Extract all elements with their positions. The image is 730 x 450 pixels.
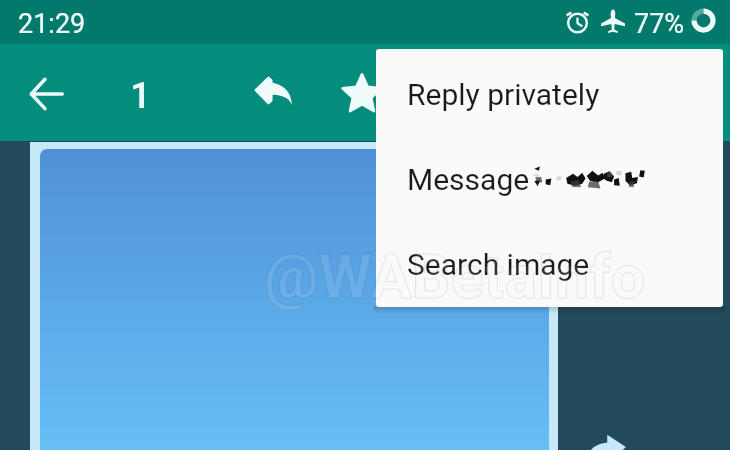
staticText: 21:29 xyxy=(18,8,86,40)
button[interactable]: Reply privately xyxy=(376,49,723,134)
button[interactable]: Search image xyxy=(376,219,723,304)
staticText: @WABetaInfo xyxy=(264,241,646,312)
button[interactable]: Reply xyxy=(252,69,298,115)
staticText: Reply privately xyxy=(407,77,600,112)
staticText: 77% xyxy=(634,8,685,40)
button[interactable]: Message xyxy=(376,134,723,219)
button[interactable]: Star xyxy=(339,71,385,117)
staticText: @WABetaInfo xyxy=(264,241,646,312)
staticText: Search image xyxy=(407,247,590,282)
button[interactable]: Forward xyxy=(570,404,646,450)
staticText: Message xyxy=(407,162,530,197)
staticText: 1 xyxy=(130,74,152,117)
button[interactable]: Back xyxy=(23,69,71,117)
